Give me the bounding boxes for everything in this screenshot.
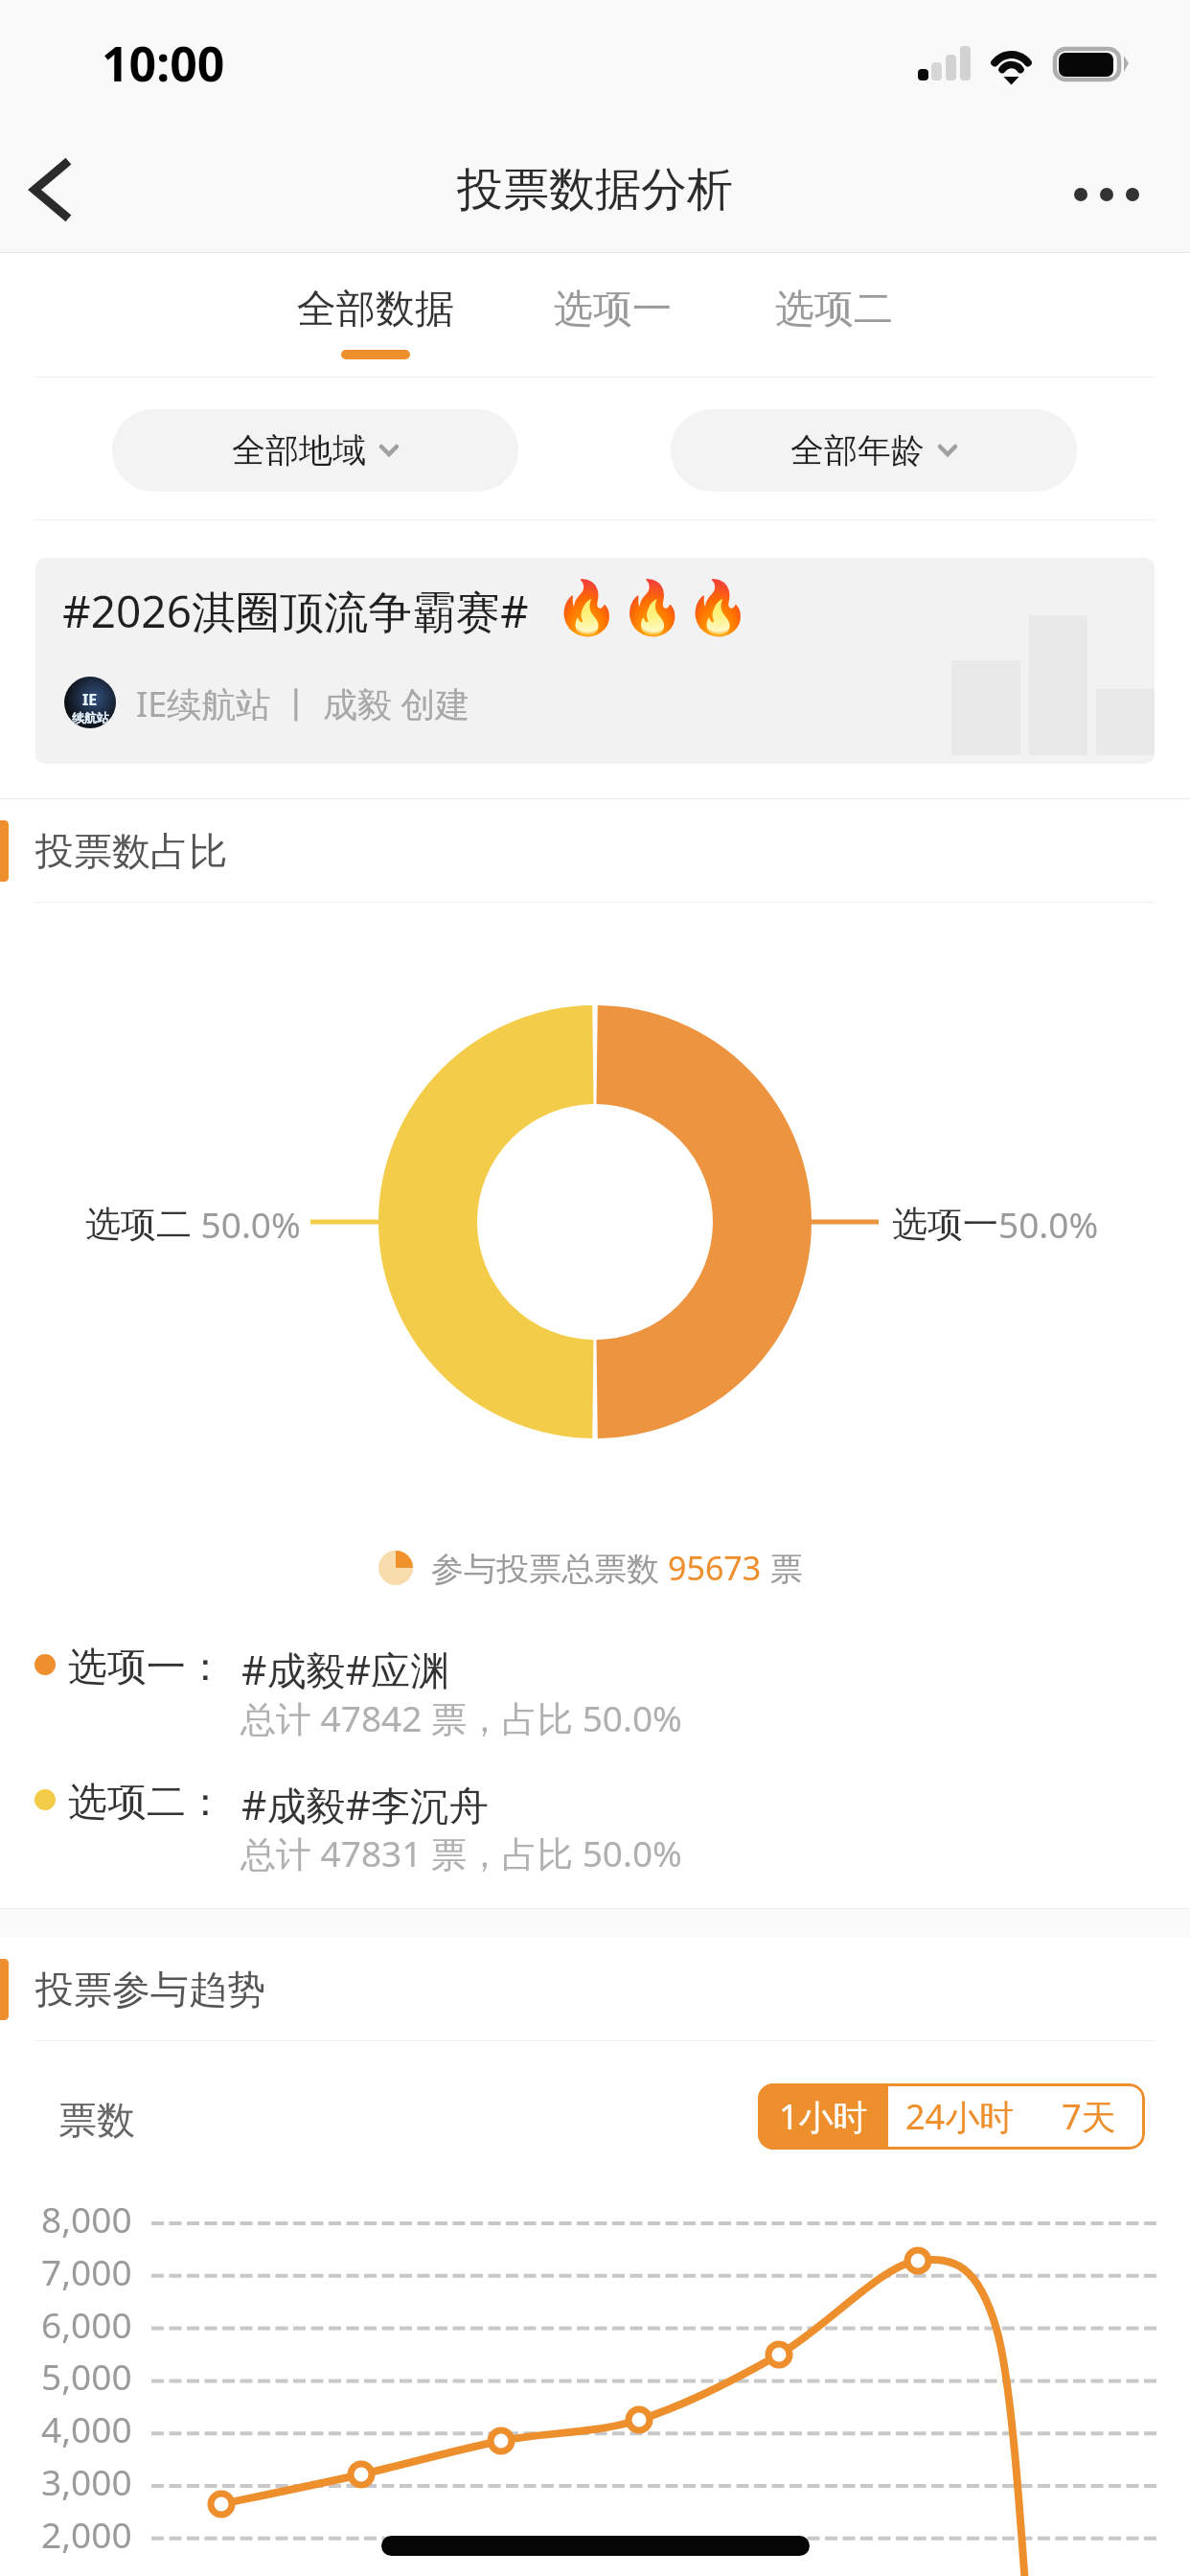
button[interactable]: 全部地域 bbox=[112, 409, 518, 492]
staticText: 全部地域 bbox=[232, 429, 366, 471]
staticText: 6,000 bbox=[41, 2300, 132, 2348]
staticText: 续航站 bbox=[72, 710, 109, 725]
button[interactable]: 选项二： bbox=[0, 1778, 1190, 1902]
button[interactable]: 7天 bbox=[1032, 2083, 1145, 2150]
staticText: 选项一： bbox=[68, 1643, 225, 1692]
staticText: 选项二 bbox=[85, 1202, 192, 1247]
staticText: 95673 bbox=[668, 1546, 762, 1590]
staticText: 7天 bbox=[1062, 2093, 1116, 2140]
staticText: 7,000 bbox=[41, 2247, 132, 2295]
staticText: 选项二： bbox=[68, 1778, 225, 1828]
staticText: 8,000 bbox=[41, 2195, 132, 2242]
staticText: 5,000 bbox=[41, 2352, 132, 2400]
staticText: 1小时 bbox=[779, 2093, 868, 2140]
staticText: 全部数据 bbox=[297, 285, 454, 334]
staticText: 24小时 bbox=[905, 2093, 1015, 2140]
staticText: 总计 47842 票，占比 50.0% bbox=[240, 1693, 682, 1742]
staticText: 2,000 bbox=[41, 2510, 132, 2558]
staticText: 🔥🔥🔥 bbox=[554, 577, 751, 638]
staticText: 参与投票总票数 bbox=[431, 1546, 668, 1590]
staticText: 投票数占比 bbox=[35, 827, 227, 875]
button[interactable]: 全部数据 bbox=[280, 253, 471, 378]
staticText: 投票数据分析 bbox=[457, 161, 733, 218]
staticText: 4,000 bbox=[41, 2404, 132, 2452]
button[interactable]: 选项一 bbox=[516, 253, 708, 378]
staticText: #成毅#李沉舟 bbox=[241, 1778, 489, 1831]
staticText: #成毅#应渊 bbox=[241, 1643, 449, 1696]
staticText: 10:00 bbox=[102, 31, 225, 96]
staticText: 选项一 bbox=[892, 1202, 998, 1247]
staticText: IE bbox=[82, 689, 98, 710]
button[interactable]: Back bbox=[2, 142, 98, 238]
button[interactable]: 24小时 bbox=[888, 2083, 1032, 2150]
staticText: 票数 bbox=[58, 2096, 135, 2144]
staticText: 选项二 bbox=[775, 285, 893, 334]
button[interactable]: More options bbox=[1059, 142, 1155, 238]
staticText: 总计 47831 票，占比 50.0% bbox=[240, 1828, 682, 1877]
staticText: 50.0% bbox=[998, 1200, 1099, 1248]
staticText: #2026淇圈顶流争霸赛# bbox=[62, 581, 529, 641]
button[interactable]: 1小时 bbox=[758, 2083, 888, 2150]
staticText: 50.0% bbox=[192, 1200, 301, 1248]
button[interactable]: 选项二 bbox=[738, 253, 929, 378]
staticText: 全部年龄 bbox=[790, 429, 925, 471]
staticText: 3,000 bbox=[41, 2457, 132, 2505]
button[interactable]: #2026淇圈顶流争霸赛# bbox=[35, 558, 1155, 764]
staticText: 投票参与趋势 bbox=[35, 1966, 265, 2013]
staticText: 票 bbox=[762, 1546, 803, 1590]
staticText: IE续航站 丨 成毅 创建 bbox=[136, 680, 470, 727]
button[interactable]: 全部年龄 bbox=[671, 409, 1077, 492]
staticText: 选项一 bbox=[554, 285, 672, 334]
button[interactable]: 选项一： bbox=[0, 1643, 1190, 1767]
